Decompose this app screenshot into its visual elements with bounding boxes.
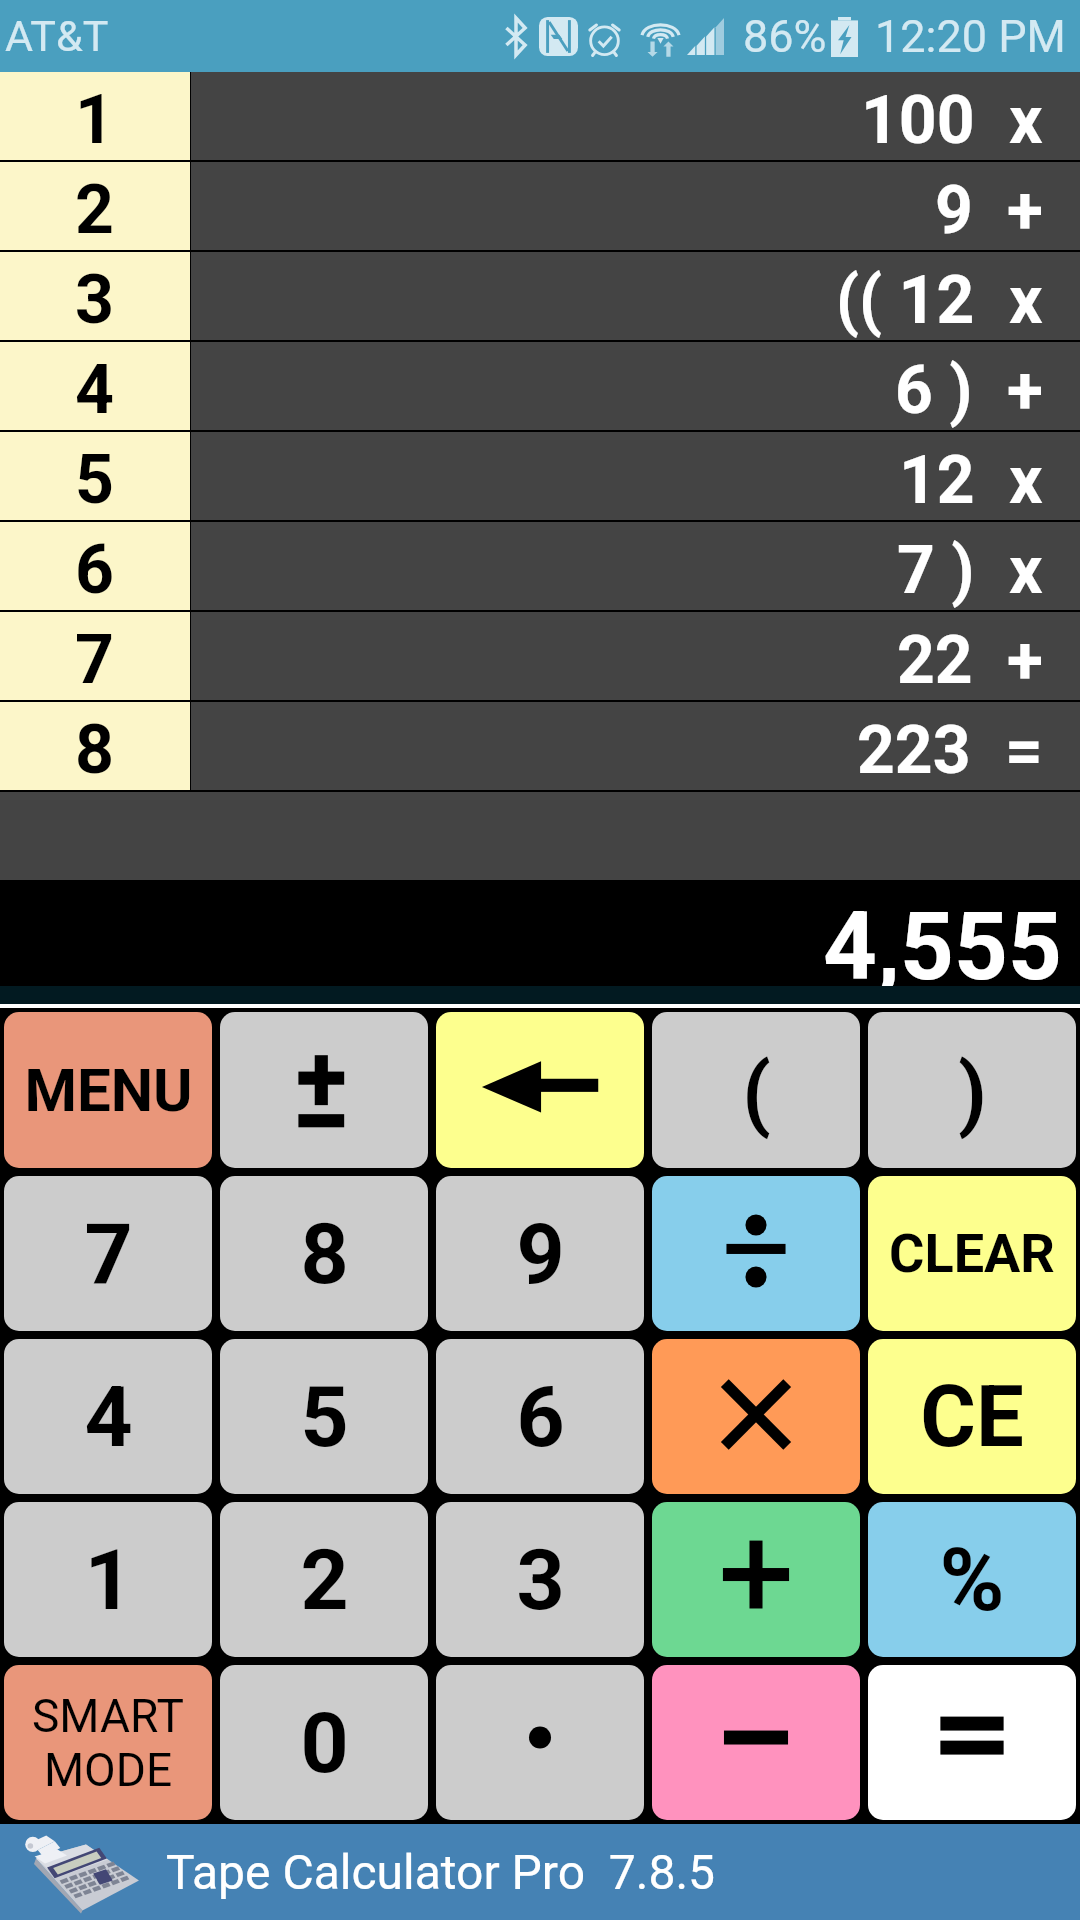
staticText: x xyxy=(1009,442,1043,519)
button[interactable]: MENU xyxy=(4,1012,212,1168)
staticText: 3 xyxy=(516,1531,565,1629)
staticText: Tape Calculator Pro 7.8.5 xyxy=(166,1844,716,1900)
staticText: 0 xyxy=(300,1694,349,1792)
staticText: 9 xyxy=(516,1205,565,1303)
staticText: x xyxy=(1009,532,1043,609)
button[interactable]: Decimal point xyxy=(436,1665,644,1820)
staticText: 4 xyxy=(84,1368,133,1466)
staticText: + xyxy=(1007,352,1043,429)
button[interactable]: 9 xyxy=(436,1176,644,1331)
button[interactable]: CE xyxy=(868,1339,1076,1494)
staticText: CE xyxy=(920,1367,1024,1467)
staticText: 12 xyxy=(899,442,975,519)
button[interactable]: 2 xyxy=(220,1502,428,1657)
staticText: 22 xyxy=(897,622,973,699)
staticText: 100 xyxy=(861,82,975,159)
staticText: 4,555 xyxy=(823,892,1062,998)
button[interactable]: Equals xyxy=(868,1665,1076,1820)
staticText: MENU xyxy=(24,1055,193,1125)
staticText: 5 xyxy=(300,1368,349,1466)
button[interactable]: Tape Calculator Pro 7.8.5 xyxy=(0,1824,1080,1920)
button[interactable]: ( xyxy=(652,1012,860,1168)
staticText: 12:20 PM xyxy=(875,10,1066,63)
button[interactable]: 2 xyxy=(0,162,1080,250)
staticText: CLEAR xyxy=(889,1222,1055,1285)
staticText: + xyxy=(1007,622,1043,699)
staticText: 8 xyxy=(300,1205,349,1303)
button[interactable]: 6 xyxy=(0,522,1080,610)
staticText: 3 xyxy=(75,260,115,340)
button[interactable]: 5 xyxy=(220,1339,428,1494)
staticText: 2 xyxy=(75,170,115,250)
staticText: 7 xyxy=(84,1205,133,1303)
staticText: ( xyxy=(742,1045,771,1141)
staticText: ) xyxy=(958,1045,987,1141)
button[interactable]: % xyxy=(868,1502,1076,1657)
button[interactable]: 3 xyxy=(0,252,1080,340)
button[interactable]: 5 xyxy=(0,432,1080,520)
staticText: 6 xyxy=(516,1368,565,1466)
staticText: 7 ) xyxy=(897,532,975,609)
button[interactable]: Multiply xyxy=(652,1339,860,1494)
button[interactable]: SMART MODE xyxy=(4,1665,212,1820)
button[interactable]: Minus xyxy=(652,1665,860,1820)
staticText: 6 xyxy=(75,530,115,610)
button[interactable]: Plus minus xyxy=(220,1012,428,1168)
staticText: (( 12 xyxy=(836,262,975,339)
staticText: x xyxy=(1009,82,1043,159)
staticText: = xyxy=(1005,712,1043,789)
staticText: 86% xyxy=(743,10,827,63)
staticText: 9 xyxy=(935,172,973,249)
button[interactable]: CLEAR xyxy=(868,1176,1076,1331)
staticText: SMART MODE xyxy=(32,1689,184,1797)
button[interactable]: 4 xyxy=(0,342,1080,430)
staticText: 8 xyxy=(75,710,115,790)
staticText: + xyxy=(1007,172,1043,249)
button[interactable]: 6 xyxy=(436,1339,644,1494)
staticText: % xyxy=(939,1528,1005,1631)
staticText: 223 xyxy=(857,712,971,789)
staticText: 4 xyxy=(75,350,115,430)
button[interactable]: 1 xyxy=(4,1502,212,1657)
staticText: 1 xyxy=(75,80,115,160)
button[interactable]: Divide xyxy=(652,1176,860,1331)
staticText: 7 xyxy=(75,620,115,700)
button[interactable]: 1 xyxy=(0,72,1080,160)
staticText: 5 xyxy=(75,440,115,520)
staticText: AT&T xyxy=(5,11,109,61)
button[interactable]: 7 xyxy=(0,612,1080,700)
staticText: 1 xyxy=(84,1531,133,1629)
staticText: 2 xyxy=(300,1531,349,1629)
staticText: x xyxy=(1009,262,1043,339)
button[interactable]: ) xyxy=(868,1012,1076,1168)
button[interactable]: Plus xyxy=(652,1502,860,1657)
staticText: 6 ) xyxy=(895,352,973,429)
button[interactable]: 3 xyxy=(436,1502,644,1657)
button[interactable]: 7 xyxy=(4,1176,212,1331)
button[interactable]: 8 xyxy=(0,702,1080,790)
button[interactable]: 4 xyxy=(4,1339,212,1494)
button[interactable]: Backspace xyxy=(436,1012,644,1168)
button[interactable]: 8 xyxy=(220,1176,428,1331)
button[interactable]: 0 xyxy=(220,1665,428,1820)
